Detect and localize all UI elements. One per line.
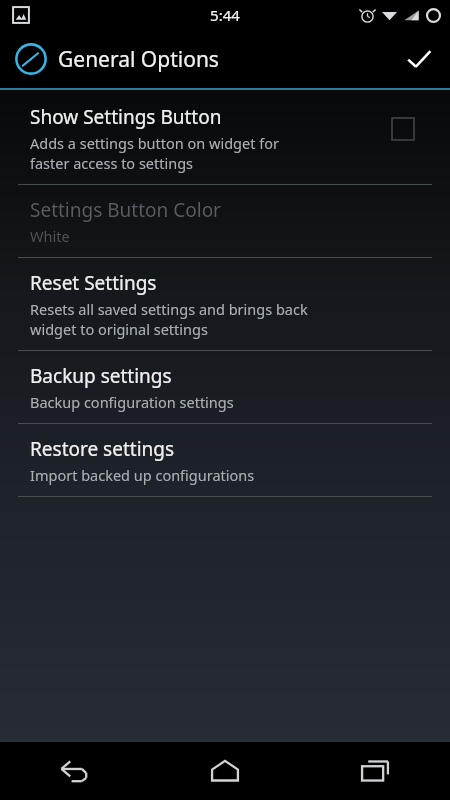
button[interactable]: Reset Settings xyxy=(0,258,450,350)
staticText: 5:44 xyxy=(210,5,240,25)
button[interactable]: Restore settings xyxy=(0,424,450,496)
button[interactable]: Show Settings Button checkbox xyxy=(386,112,420,146)
button[interactable]: Back xyxy=(0,742,150,800)
button[interactable]: Recent apps xyxy=(300,742,450,800)
staticText: Import backed up configurations xyxy=(30,465,255,485)
staticText: Backup settings xyxy=(30,363,172,389)
staticText: General Options xyxy=(58,45,219,74)
staticText: Backup configuration settings xyxy=(30,392,234,412)
staticText: Reset Settings xyxy=(30,270,157,296)
button[interactable]: Done xyxy=(388,30,450,88)
staticText: Resets all saved settings and brings bac… xyxy=(30,299,308,339)
staticText: White xyxy=(30,226,70,246)
button[interactable]: Backup settings xyxy=(0,351,450,423)
button[interactable]: Show Settings Button xyxy=(0,92,450,184)
staticText: Restore settings xyxy=(30,436,175,462)
staticText: Show Settings Button xyxy=(30,104,222,130)
button[interactable]: General Options xyxy=(0,30,388,88)
button[interactable]: Settings Button Color xyxy=(0,185,450,257)
staticText: Adds a settings button on widget for fas… xyxy=(30,133,279,173)
button[interactable]: Home xyxy=(150,742,300,800)
staticText: Settings Button Color xyxy=(30,197,221,223)
